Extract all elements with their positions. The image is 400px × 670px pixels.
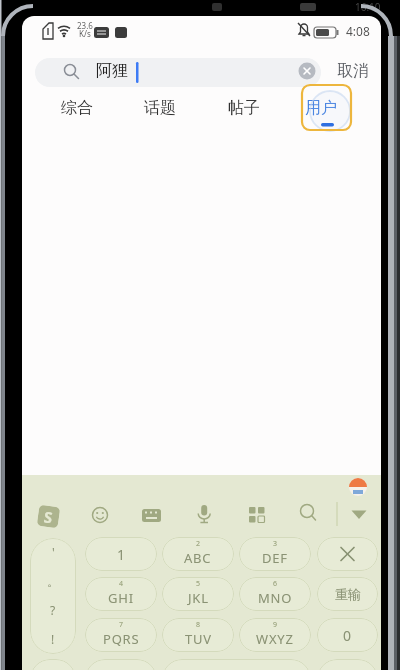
staticText: 。 — [47, 574, 59, 589]
button[interactable]: 8 — [162, 618, 234, 652]
staticText: 16:10 — [355, 0, 381, 13]
staticText: 9 — [273, 620, 278, 630]
staticText: WXYZ — [256, 630, 294, 648]
button[interactable] — [88, 503, 112, 527]
button[interactable]: 1 — [85, 537, 157, 571]
staticText: 3 — [273, 539, 278, 549]
staticText: 8 — [196, 620, 201, 630]
staticText: GHI — [108, 589, 134, 607]
staticText: DEF — [262, 549, 288, 567]
button[interactable]: S — [37, 505, 60, 528]
staticText: ' — [52, 544, 55, 560]
staticText: 23.6 — [77, 20, 93, 30]
staticText: 阿狸 — [96, 61, 128, 81]
staticText: 5 — [196, 579, 201, 589]
button[interactable]: 5 — [162, 577, 234, 611]
button[interactable] — [192, 503, 216, 527]
button[interactable] — [85, 659, 157, 670]
staticText: ABC — [184, 549, 212, 567]
staticText: 1 — [117, 545, 126, 564]
staticText: 6 — [273, 579, 278, 589]
button[interactable] — [30, 538, 76, 654]
staticText: 帖子 — [228, 98, 260, 118]
button[interactable]: 7 — [85, 618, 157, 652]
button[interactable]: 用户 — [303, 98, 339, 118]
button[interactable] — [35, 58, 321, 87]
staticText: MNO — [258, 589, 293, 607]
button[interactable] — [296, 503, 320, 527]
staticText: ? — [50, 602, 56, 618]
staticText: 0 — [343, 626, 352, 645]
staticText: 2 — [196, 539, 201, 549]
staticText: 重输 — [335, 586, 361, 602]
button[interactable]: 取消 — [335, 61, 371, 81]
staticText: 取消 — [337, 61, 369, 81]
button[interactable] — [298, 62, 316, 80]
staticText: 综合 — [61, 98, 93, 118]
staticText: JKL — [188, 589, 209, 607]
button[interactable] — [347, 503, 371, 527]
staticText: TUV — [185, 630, 212, 648]
staticText: S — [43, 506, 54, 528]
staticText: 用户 — [305, 98, 337, 118]
button[interactable]: 0 — [317, 618, 378, 652]
button[interactable] — [30, 659, 76, 670]
button[interactable] — [162, 659, 311, 670]
staticText: 4 — [119, 579, 124, 589]
button[interactable]: 综合 — [59, 98, 95, 118]
button[interactable] — [317, 537, 378, 571]
button[interactable]: 重输 — [317, 577, 378, 611]
button[interactable]: 9 — [239, 618, 311, 652]
staticText: K/s — [79, 28, 91, 38]
button[interactable]: 帖子 — [226, 98, 262, 118]
button[interactable] — [139, 503, 163, 527]
staticText: 7 — [119, 620, 124, 630]
staticText: 4:08 — [346, 23, 370, 39]
button[interactable] — [244, 503, 268, 527]
staticText: PQRS — [103, 630, 140, 648]
button[interactable] — [317, 659, 378, 670]
button[interactable]: 3 — [239, 537, 311, 571]
button[interactable]: 2 — [162, 537, 234, 571]
button[interactable]: 4 — [85, 577, 157, 611]
button[interactable]: 6 — [239, 577, 311, 611]
staticText: 话题 — [144, 98, 176, 118]
button[interactable]: 话题 — [142, 98, 178, 118]
staticText: ! — [51, 631, 55, 647]
